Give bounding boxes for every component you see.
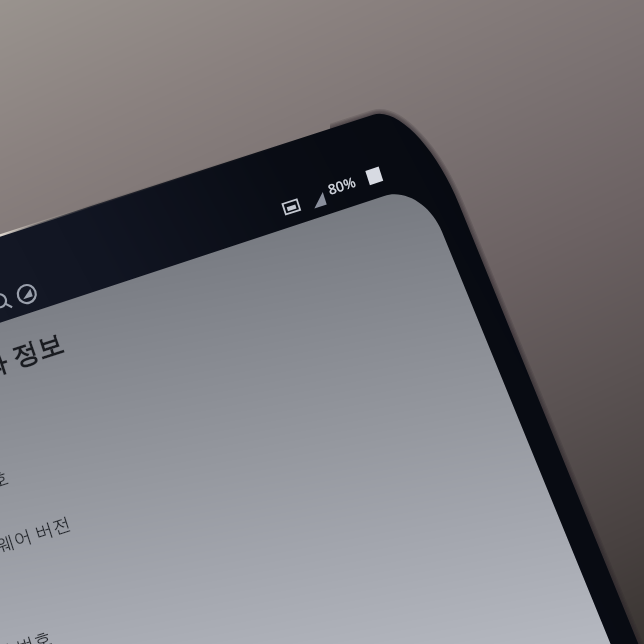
button[interactable]: 검색 — [0, 274, 36, 316]
button[interactable] — [0, 482, 240, 544]
button[interactable]: 화면 회전 — [12, 272, 54, 314]
button[interactable] — [0, 580, 240, 644]
